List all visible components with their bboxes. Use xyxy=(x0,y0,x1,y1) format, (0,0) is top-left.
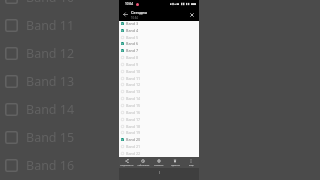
staticText: Band 16 xyxy=(26,157,75,174)
staticText: Band 12 xyxy=(26,45,75,62)
staticText: Band 10 xyxy=(126,69,141,74)
button[interactable]: Band 22 xyxy=(121,150,199,157)
staticText: Band 21 xyxy=(126,144,141,149)
staticText: Band 10 xyxy=(26,0,75,6)
button[interactable]: Band 20 xyxy=(121,136,199,143)
staticText: 10:54 xyxy=(125,2,134,6)
button[interactable]: Band 6 xyxy=(121,40,199,47)
button[interactable]: Band 4 xyxy=(121,27,199,34)
staticText: Band 7 xyxy=(126,48,139,53)
staticText: Band 11 xyxy=(126,76,141,81)
staticText: Band 5 xyxy=(126,35,139,40)
button[interactable]: Избранное xyxy=(135,157,151,168)
button[interactable]: Band 10 xyxy=(121,68,199,75)
button[interactable]: Band 14 xyxy=(121,95,199,102)
staticText: Band 11 xyxy=(26,17,75,34)
staticText: Избранное xyxy=(137,164,150,167)
button[interactable]: Ещё xyxy=(183,157,199,168)
staticText: Сегодня xyxy=(131,10,147,15)
staticText: Band 9 xyxy=(126,62,139,67)
button[interactable]: Band 19 xyxy=(121,129,199,136)
staticText: Band 22 xyxy=(126,151,141,156)
staticText: Band 17 xyxy=(126,117,141,122)
button[interactable]: Close xyxy=(188,11,195,18)
button[interactable]: Band 16 xyxy=(121,109,199,116)
staticText: Открыть xyxy=(154,164,164,167)
staticText: Band 4 xyxy=(126,28,139,33)
staticText: Поделиться xyxy=(120,164,134,167)
staticText: Band 13 xyxy=(26,73,75,90)
button[interactable]: Открыть xyxy=(151,157,167,168)
staticText: Band 16 xyxy=(126,110,141,115)
staticText: Band 3 xyxy=(126,21,139,26)
button[interactable]: Band 11 xyxy=(121,75,199,82)
staticText: Band 6 xyxy=(126,41,139,46)
staticText: Band 19 xyxy=(126,130,141,135)
button[interactable]: Band 8 xyxy=(121,54,199,61)
button[interactable]: Band 12 xyxy=(121,81,199,88)
button[interactable]: Band 5 xyxy=(121,34,199,41)
button[interactable]: Band 12 xyxy=(0,39,320,67)
staticText: Band 8 xyxy=(126,55,139,60)
button[interactable]: Band 18 xyxy=(121,123,199,130)
button[interactable]: Band 15 xyxy=(0,123,320,151)
staticText: Удалить xyxy=(171,164,180,167)
button[interactable]: Band 15 xyxy=(121,102,199,109)
staticText: Band 13 xyxy=(126,89,141,94)
button[interactable]: Band 14 xyxy=(0,95,320,123)
button[interactable]: Band 7 xyxy=(121,47,199,54)
button[interactable]: Поделиться xyxy=(119,157,135,168)
button[interactable]: Удалить xyxy=(167,157,183,168)
button[interactable]: Back xyxy=(122,11,129,18)
staticText: Band 20 xyxy=(126,137,141,142)
staticText: Band 18 xyxy=(126,124,141,129)
button[interactable]: Band 13 xyxy=(0,67,320,95)
staticText: Band 15 xyxy=(126,103,141,108)
button[interactable]: Band 3 xyxy=(121,20,199,27)
button[interactable]: Band 21 xyxy=(121,143,199,150)
staticText: Band 15 xyxy=(26,129,75,146)
staticText: Ещё xyxy=(189,164,194,167)
button[interactable]: Band 10 xyxy=(0,0,320,11)
button[interactable]: Band 9 xyxy=(121,61,199,68)
button[interactable]: Band 13 xyxy=(121,88,199,95)
staticText: Band 14 xyxy=(126,96,141,101)
staticText: Band 12 xyxy=(126,82,141,87)
staticText: 10:54 xyxy=(131,16,138,20)
button[interactable]: Band 17 xyxy=(121,116,199,123)
staticText: Band 14 xyxy=(26,101,75,118)
button[interactable]: Band 11 xyxy=(0,11,320,39)
button[interactable]: Band 16 xyxy=(0,151,320,179)
